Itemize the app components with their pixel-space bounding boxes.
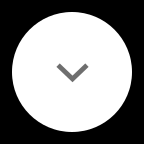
button[interactable]: Dismiss [0, 0, 144, 144]
